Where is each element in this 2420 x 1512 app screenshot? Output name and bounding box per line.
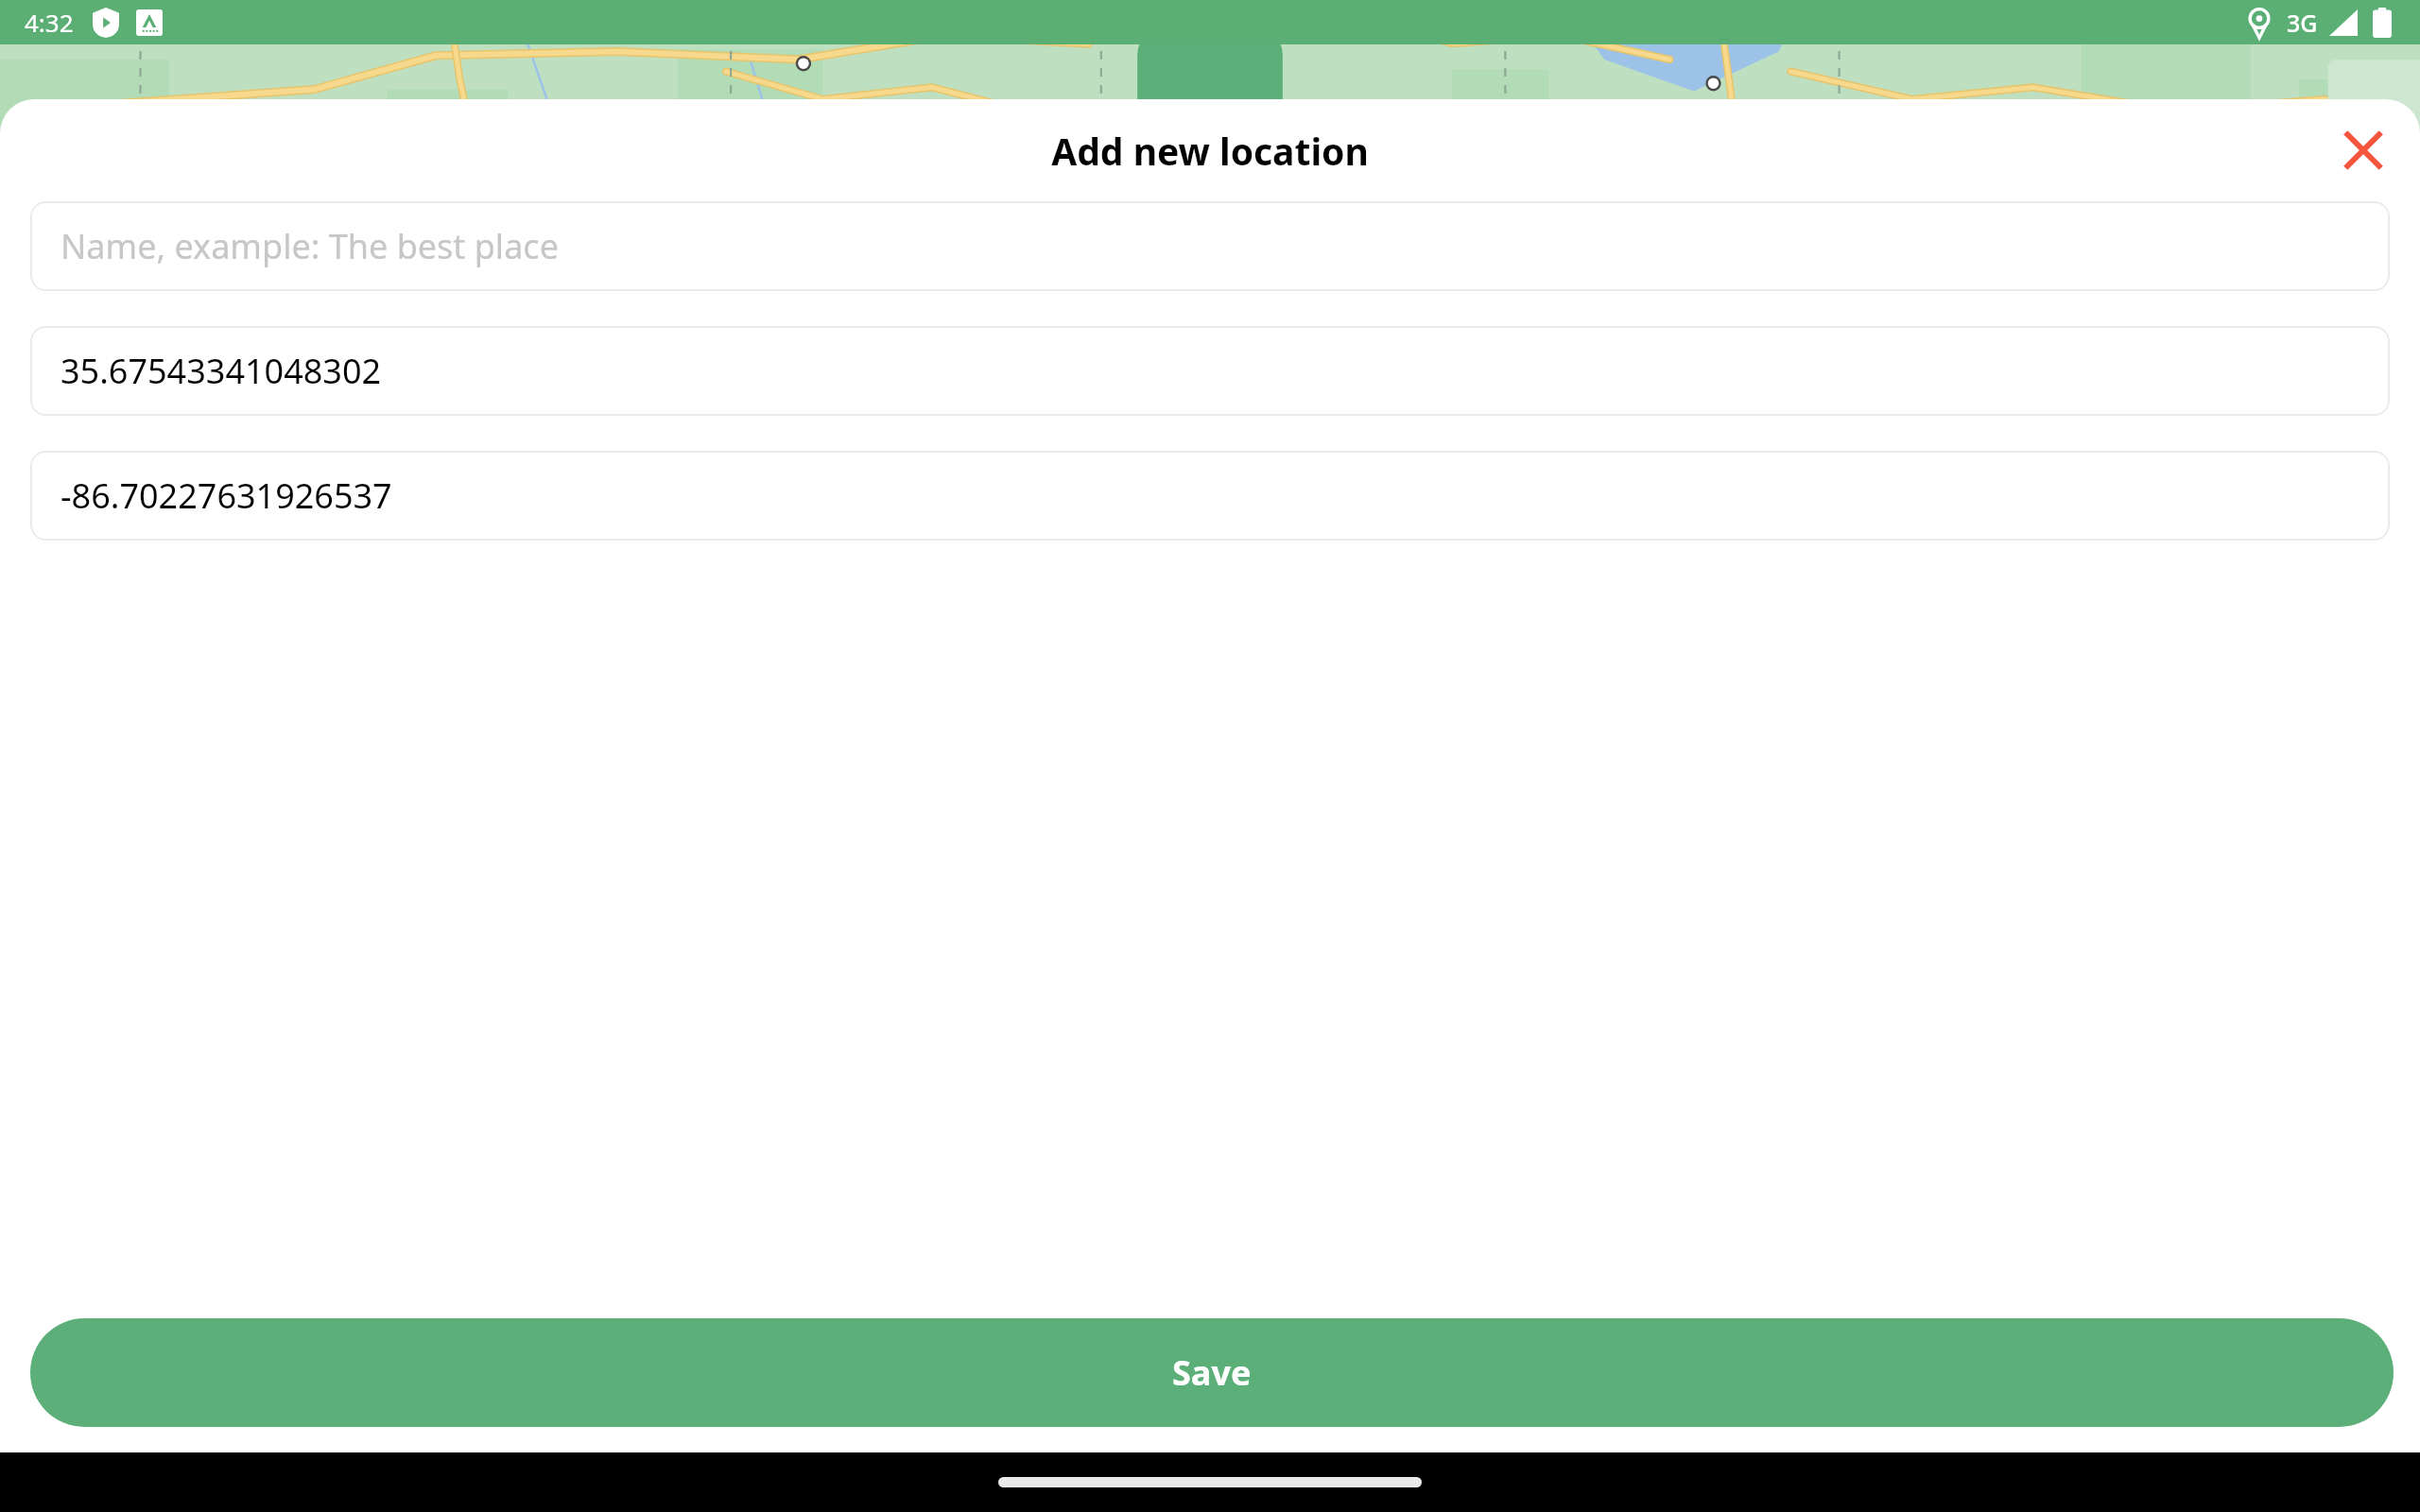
staticText: 3G xyxy=(2287,7,2318,39)
staticText: -86.70227631926537 xyxy=(60,472,392,519)
button[interactable]: Save xyxy=(30,1318,2394,1427)
button[interactable]: Name, example: The best place xyxy=(30,201,2390,291)
button[interactable]: -86.70227631926537 xyxy=(30,451,2390,541)
staticText: Add new location xyxy=(1051,126,1369,176)
staticText: Name, example: The best place xyxy=(60,223,559,269)
staticText: 4:32 xyxy=(25,6,74,39)
staticText: Save xyxy=(1172,1349,1252,1396)
staticText: 35.67543341048302 xyxy=(60,348,382,394)
button[interactable]: 35.67543341048302 xyxy=(30,326,2390,416)
button[interactable]: Close xyxy=(2327,114,2399,186)
